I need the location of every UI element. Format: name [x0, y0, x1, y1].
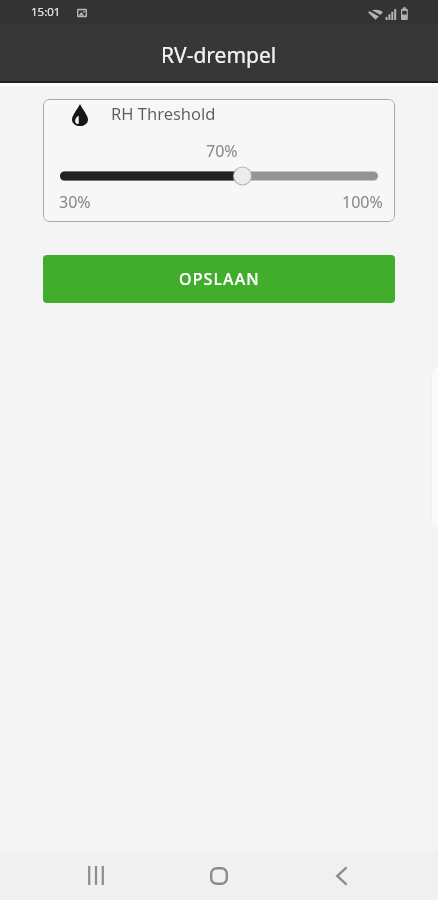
staticText: RH Threshold [111, 102, 216, 124]
staticText: 15:01 [31, 4, 61, 20]
button[interactable]: OPSLAAN [43, 255, 395, 303]
staticText: 70% [206, 140, 238, 162]
button[interactable]: Back [300, 851, 382, 900]
button[interactable]: Recent apps [55, 851, 137, 900]
button[interactable]: RH threshold slider, 70 percent [43, 166, 395, 186]
staticText: 30% [59, 191, 91, 213]
staticText: 100% [342, 191, 383, 213]
staticText: OPSLAAN [179, 268, 260, 290]
button[interactable]: Home [178, 851, 260, 900]
staticText: RV-drempel [161, 41, 277, 70]
